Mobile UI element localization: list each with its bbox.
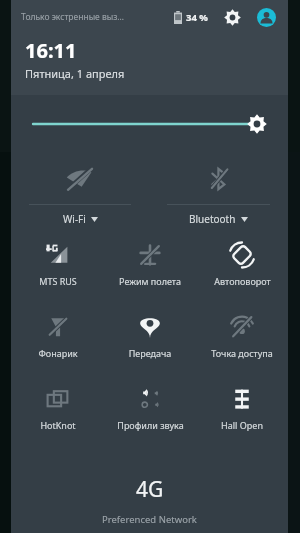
- button[interactable]: Автоповорот: [196, 233, 288, 305]
- button[interactable]: Settings: [220, 5, 244, 29]
- button[interactable]: Профили звука: [104, 377, 196, 449]
- staticText: 16:11: [25, 37, 77, 64]
- button[interactable]: Передача геоданных: [104, 305, 196, 377]
- staticText: MTS RUS: [39, 275, 77, 287]
- staticText: Профили звука: [117, 419, 184, 431]
- button[interactable]: Точка доступа: [196, 305, 288, 377]
- button[interactable]: Hall Open: [196, 377, 288, 449]
- staticText: Фонарик: [38, 347, 78, 359]
- staticText: Preferenced Network: [102, 513, 197, 526]
- staticText: Автоповорот: [214, 275, 271, 287]
- button[interactable]: Wi-Fi: [11, 153, 149, 233]
- staticText: 34 %: [186, 11, 208, 24]
- button[interactable]: User profile: [254, 5, 278, 29]
- staticText: Только экстренные выз…: [21, 11, 125, 23]
- button[interactable]: 4G: [11, 457, 288, 533]
- staticText: Wi-Fi: [63, 212, 86, 226]
- button[interactable]: Фонарик: [11, 305, 104, 377]
- staticText: Передача геоданных: [104, 347, 196, 359]
- staticText: Точка доступа: [211, 347, 273, 359]
- staticText: Bluetooth: [189, 212, 236, 226]
- staticText: Пятница, 1 апреля: [25, 66, 125, 81]
- staticText: Режим полета: [119, 275, 181, 287]
- button[interactable]: MTS RUS: [11, 233, 104, 305]
- button[interactable]: HotKnot: [11, 377, 104, 449]
- button[interactable]: Режим полета: [104, 233, 196, 305]
- staticText: HotKnot: [40, 419, 76, 431]
- staticText: 4G: [136, 475, 164, 504]
- button[interactable]: Brightness: [11, 95, 288, 153]
- staticText: Hall Open: [221, 419, 263, 431]
- button[interactable]: Bluetooth: [149, 153, 288, 233]
